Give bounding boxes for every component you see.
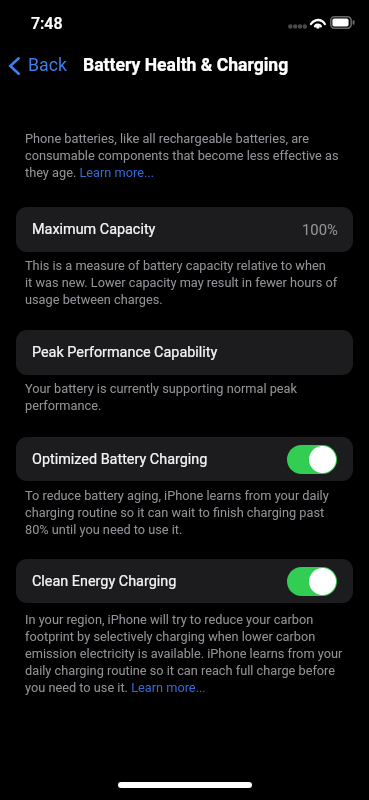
staticText: Your battery is currently supporting nor…: [25, 381, 297, 413]
staticText: 7:48: [31, 14, 63, 33]
staticText: Battery Health & Charging: [83, 55, 289, 76]
staticText: Back: [28, 55, 67, 76]
button[interactable]: Back: [4, 52, 75, 79]
staticText: To reduce battery aging, iPhone learns f…: [25, 488, 329, 537]
staticText: In your region, iPhone will try to reduc…: [25, 612, 343, 695]
button[interactable]: Optimized Battery Charging toggle: [287, 445, 337, 474]
staticText: Clean Energy Charging: [32, 573, 177, 590]
staticText: Maximum Capacity: [32, 221, 156, 238]
staticText: This is a measure of battery capacity re…: [25, 258, 338, 307]
staticText: 100%: [302, 221, 338, 238]
staticText: Phone batteries, like all rechargeable b…: [25, 131, 339, 180]
button[interactable]: Clean Energy Charging toggle: [287, 567, 337, 596]
staticText: Peak Performance Capability: [32, 344, 218, 361]
staticText: Optimized Battery Charging: [32, 451, 208, 468]
button[interactable]: Maximum Capacity: [16, 207, 353, 252]
button[interactable]: Peak Performance Capability: [16, 330, 353, 375]
